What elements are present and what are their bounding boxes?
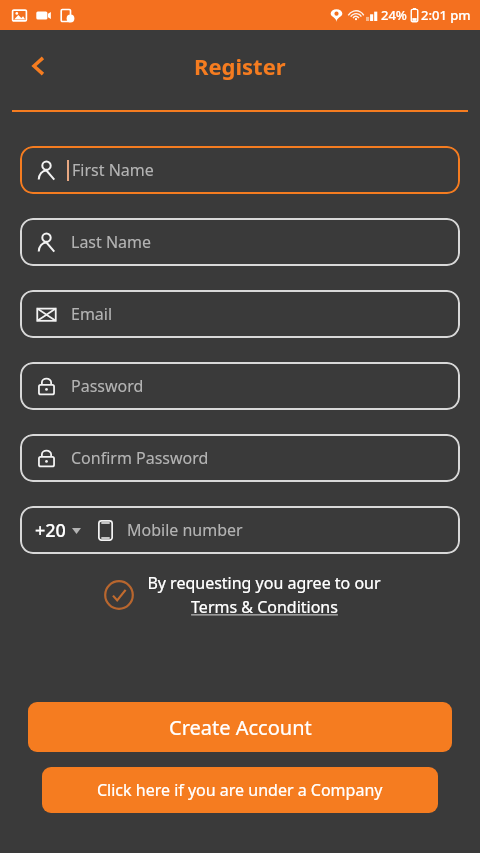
staticText: Mobile number: [127, 519, 243, 541]
staticText: Password: [71, 375, 144, 397]
staticText: First Name: [72, 159, 154, 181]
staticText: Click here if you are under a Company: [97, 779, 383, 801]
button[interactable]: Last Name: [20, 218, 460, 266]
button[interactable]: Click here if you are under a Company: [42, 767, 438, 813]
staticText: Confirm Password: [71, 447, 209, 469]
staticText: Create Account: [169, 714, 312, 741]
button[interactable]: First Name: [20, 146, 460, 194]
button[interactable]: Agree to terms: [99, 575, 139, 615]
staticText: Terms & Conditions: [191, 596, 338, 618]
button[interactable]: Password: [20, 362, 460, 410]
button[interactable]: Email: [20, 290, 460, 338]
button[interactable]: +20: [32, 514, 84, 547]
staticText: Last Name: [71, 231, 152, 253]
button[interactable]: Confirm Password: [20, 434, 460, 482]
button[interactable]: Create Account: [28, 702, 452, 752]
button[interactable]: Terms & Conditions: [191, 596, 338, 618]
staticText: By requesting you agree to our: [147, 572, 381, 594]
button[interactable]: +20: [20, 506, 460, 554]
staticText: Register: [194, 51, 286, 81]
staticText: +20: [35, 518, 66, 543]
button[interactable]: Back: [16, 43, 62, 89]
staticText: 2:01 pm: [421, 6, 471, 24]
staticText: Email: [71, 303, 113, 325]
staticText: 24%: [381, 6, 407, 24]
